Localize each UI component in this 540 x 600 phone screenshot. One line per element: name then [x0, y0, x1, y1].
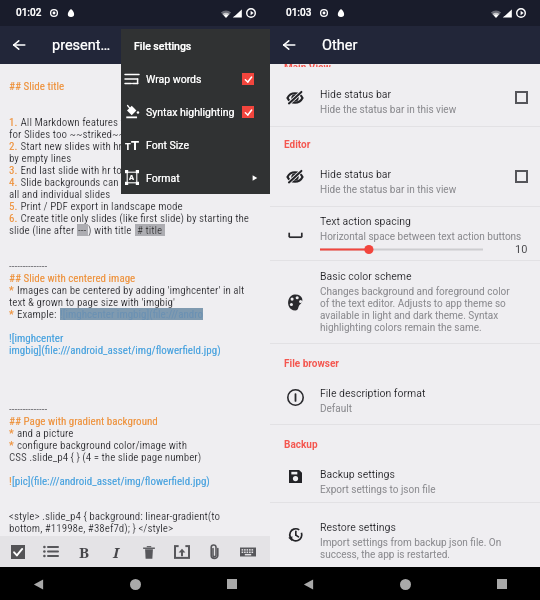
staticText: -------------- — [9, 403, 48, 415]
button[interactable]: Recent apps — [488, 570, 516, 598]
staticText: Format — [146, 172, 180, 184]
staticText: Wrap words — [146, 73, 202, 85]
button[interactable]: Home — [121, 570, 149, 598]
staticText: File browser — [284, 358, 339, 370]
staticText: [pic](file:///android_asset/img/flowerfi… — [12, 475, 210, 487]
button[interactable]: Bullet list — [35, 536, 65, 567]
staticText: Syntax highlighting — [146, 106, 235, 118]
staticText: <style> .slide_p4 { background: linear-g… — [9, 510, 220, 522]
button[interactable]: Syntax highlighting — [121, 95, 270, 128]
button[interactable]: File description format — [270, 369, 540, 424]
staticText: text & grown to page size with 'imgbig' — [9, 296, 175, 308]
staticText: Editor — [284, 139, 311, 151]
button[interactable]: Delete — [134, 536, 164, 567]
button[interactable]: Back — [24, 570, 52, 598]
staticText: CSS .slide_p4 { } (4 = the slide page nu… — [9, 451, 202, 463]
staticText: Print / PDF export in landscape mode — [18, 200, 183, 212]
staticText: all and individual slides — [9, 188, 111, 200]
staticText: by empty lines — [9, 152, 72, 164]
staticText: ## Slide title — [9, 80, 65, 92]
button[interactable]: Text action spacing — [270, 207, 540, 260]
staticText: 4. — [9, 176, 18, 188]
staticText: End last slide with hr too — [18, 164, 128, 176]
button[interactable]: Hide status bar — [270, 147, 540, 206]
staticText: Hide the status bar in this view — [320, 184, 457, 196]
staticText: Other — [322, 37, 358, 54]
staticText: All Markdown features work — [18, 116, 142, 128]
staticText: Hide status bar — [320, 168, 392, 180]
button[interactable]: Basic color scheme — [270, 261, 540, 343]
staticText: Backup settings — [320, 468, 395, 480]
staticText: 6. — [9, 212, 18, 224]
staticText: Slide backgrounds can be set — [18, 176, 148, 188]
button[interactable]: Navigate up — [0, 26, 38, 64]
staticText: # title — [137, 224, 163, 236]
button[interactable]: Bold — [69, 536, 99, 567]
staticText: Basic color scheme — [320, 270, 412, 282]
staticText: Hide status bar — [320, 88, 392, 100]
staticText: File settings — [134, 40, 192, 52]
staticText: -------------- — [9, 260, 48, 272]
staticText: T — [131, 138, 139, 153]
staticText: 01:02 — [16, 7, 42, 19]
staticText: 01:03 — [286, 7, 312, 19]
staticText: bottom, #11998e, #38ef7d); } </style> — [9, 522, 174, 534]
staticText: ## Page with gradient background — [9, 415, 158, 427]
staticText: ## Slide with centered image — [9, 272, 136, 284]
staticText: Export settings to json file — [320, 484, 436, 496]
staticText: I — [113, 542, 120, 562]
button[interactable]: Backup settings — [270, 450, 540, 502]
button[interactable]: Toggle Hide status bar — [515, 91, 528, 104]
staticText: Horizontal space between text action but… — [320, 231, 522, 243]
button[interactable]: Toggle check list — [3, 536, 33, 567]
staticText: * — [9, 308, 17, 320]
button[interactable]: Back — [294, 570, 322, 598]
staticText: highlighting colors remain the same. — [320, 322, 482, 334]
staticText: 10 — [515, 243, 528, 256]
button[interactable]: Wrap words — [121, 62, 270, 95]
button[interactable]: Home — [391, 570, 419, 598]
staticText: Create title only slides (like first sli… — [18, 212, 250, 224]
staticText: A — [129, 173, 135, 182]
staticText: present… — [52, 37, 111, 54]
staticText: ) with title — [88, 224, 135, 236]
button[interactable]: Toggle Hide status bar — [515, 170, 528, 183]
button[interactable]: Restore settings — [270, 503, 540, 565]
staticText: configure background color/image with — [17, 439, 187, 451]
staticText: slide (line after — [9, 224, 77, 236]
button[interactable]: Italic — [101, 536, 131, 567]
button[interactable]: Export — [167, 536, 197, 567]
staticText: --- — [78, 224, 87, 236]
staticText: Start new slides with hr — [18, 140, 122, 152]
staticText: imgbig](file:///android_asset/img/flower… — [9, 344, 221, 356]
staticText: * — [9, 284, 17, 296]
staticText: 5. — [9, 200, 18, 212]
staticText: success, the app is restarted. — [320, 549, 450, 561]
staticText: Example: — [17, 308, 60, 320]
staticText: Import settings from backup json file. O… — [320, 537, 502, 549]
staticText: and a picture — [17, 427, 74, 439]
staticText: 3. — [9, 164, 18, 176]
button[interactable]: Attach file — [199, 536, 229, 567]
staticText: 2. — [9, 140, 18, 152]
staticText: T — [125, 142, 131, 153]
staticText: of the text editor. Adjusts to app theme… — [320, 298, 506, 310]
button[interactable]: Navigate up — [270, 26, 308, 64]
staticText: Images can be centered by adding 'imghce… — [17, 284, 245, 296]
staticText: Restore settings — [320, 521, 396, 533]
staticText: ![imghcenter imgbig](file:///andro — [60, 308, 203, 320]
staticText: * — [9, 439, 17, 451]
staticText: B — [79, 542, 90, 562]
staticText: File description format — [320, 387, 426, 399]
staticText: available in light and dark theme. Synta… — [320, 310, 499, 322]
staticText: Text action spacing — [320, 215, 411, 227]
button[interactable]: T — [121, 128, 270, 161]
button[interactable]: Recent apps — [218, 570, 246, 598]
staticText: for Slides too ~~striked~~ — [9, 128, 126, 140]
button[interactable]: Show keyboard — [233, 536, 263, 567]
button[interactable]: A — [121, 161, 270, 194]
staticText: Hide the status bar in this view — [320, 104, 457, 116]
staticText: ! — [9, 475, 12, 487]
staticText: Backup — [284, 439, 318, 451]
button[interactable]: Hide status bar — [270, 69, 540, 126]
